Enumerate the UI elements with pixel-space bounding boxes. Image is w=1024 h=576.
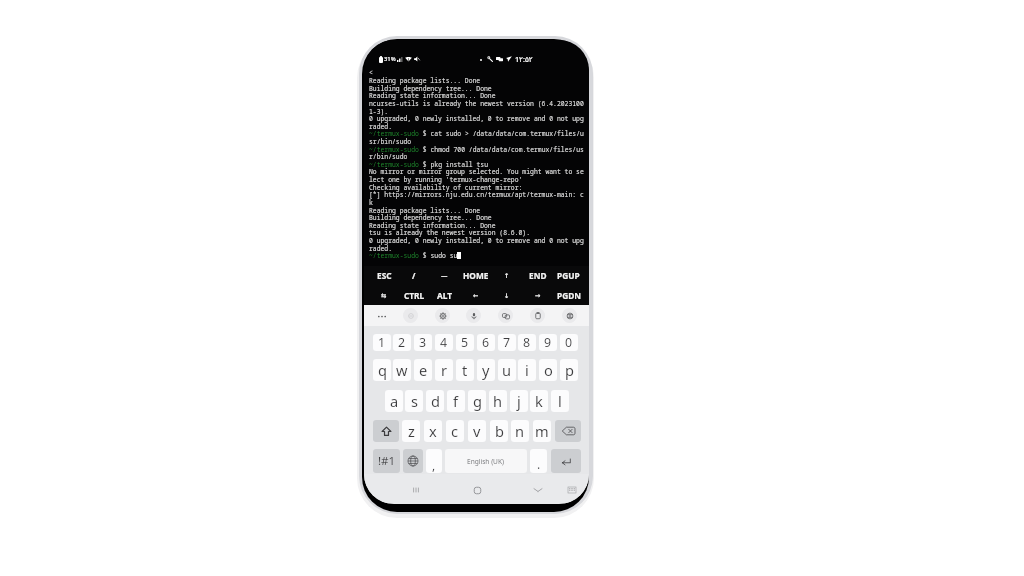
button[interactable]: i (518, 359, 536, 381)
button[interactable]: ⇆ (369, 285, 399, 305)
button[interactable]: Hide keyboard (530, 482, 546, 498)
staticText: Reading package lists... Done (369, 76, 481, 85)
button[interactable]: z (402, 420, 420, 442)
button[interactable]: n (511, 420, 529, 442)
staticText: r (441, 360, 448, 380)
button[interactable]: y (477, 359, 495, 381)
button[interactable]: Backspace (555, 420, 581, 442)
staticText: $ cat sudo > /data/data/com.termux/files… (419, 129, 584, 138)
button[interactable]: Stickers (498, 308, 513, 323)
button[interactable]: t (456, 359, 474, 381)
staticText: v (473, 421, 481, 441)
staticText: [*] https://mirrors.nju.edu.cn/termux/ap… (369, 190, 584, 199)
button[interactable]: HOME (460, 266, 491, 285)
button[interactable]: 2 (393, 334, 411, 351)
staticText: 0 (565, 334, 573, 351)
staticText: k (369, 198, 373, 207)
button[interactable]: b (490, 420, 508, 442)
button[interactable]: Shift (373, 420, 399, 442)
staticText: $ chmod 700 /data/data/com.termux/files/… (419, 145, 584, 154)
button[interactable]: PGUP (553, 266, 584, 285)
button[interactable]: Recent apps (408, 482, 424, 498)
staticText: d (431, 391, 440, 411)
button[interactable]: 5 (456, 334, 474, 351)
button[interactable]: l (551, 390, 569, 412)
button[interactable]: d (426, 390, 444, 412)
button[interactable]: . (530, 449, 547, 473)
button[interactable]: ↓ (491, 285, 522, 305)
button[interactable]: r (435, 359, 453, 381)
button[interactable]: e (414, 359, 432, 381)
button[interactable]: k (530, 390, 548, 412)
button[interactable]: q (373, 359, 391, 381)
button[interactable]: c (446, 420, 464, 442)
button[interactable]: j (510, 390, 528, 412)
button[interactable]: Clipboard (530, 308, 545, 323)
button[interactable]: ESC (369, 266, 399, 285)
staticText: lect one by running 'termux-change-repo' (369, 175, 523, 184)
button[interactable]: 6 (477, 334, 495, 351)
staticText: raded. (369, 122, 393, 131)
staticText: q (378, 360, 387, 380)
staticText: ~/termux-sudo (369, 129, 419, 138)
button[interactable]: ← (460, 285, 491, 305)
button[interactable]: h (489, 390, 507, 412)
button[interactable]: 1 (373, 334, 391, 351)
staticText: y (482, 360, 490, 380)
staticText: Reading state information... Done (369, 91, 496, 100)
staticText: ncurses-utils is already the newest vers… (369, 99, 584, 108)
button[interactable]: ↑ (491, 266, 522, 285)
button[interactable]: Modes (562, 308, 577, 323)
staticText: ~/termux-sudo (369, 251, 419, 260)
button[interactable]: English (UK) (445, 449, 527, 473)
button[interactable]: Search (403, 308, 418, 323)
button[interactable]: 8 (518, 334, 536, 351)
button[interactable]: — (429, 266, 460, 285)
staticText: 2 (398, 334, 406, 351)
staticText: END (529, 270, 547, 281)
staticText: 1۲:۵۲ (515, 54, 533, 64)
staticText: 9 (544, 334, 552, 351)
button[interactable]: Enter (551, 449, 581, 473)
staticText: ~/termux-sudo (369, 160, 419, 169)
button[interactable]: g (468, 390, 486, 412)
button[interactable]: o (539, 359, 557, 381)
button[interactable]: !#1 (373, 449, 400, 473)
button[interactable]: u (498, 359, 516, 381)
button[interactable]: a (385, 390, 403, 412)
button[interactable]: Settings (435, 308, 450, 323)
staticText: b (495, 421, 504, 441)
button[interactable]: PGDN (553, 285, 584, 305)
button[interactable]: f (447, 390, 465, 412)
staticText: 8 (523, 334, 531, 351)
staticText: ~/termux-sudo (369, 145, 419, 154)
button[interactable]: , (426, 449, 442, 473)
staticText: No mirror or mirror group selected. You … (369, 167, 584, 176)
button[interactable]: w (393, 359, 411, 381)
staticText: Building dependency tree... Done (369, 213, 492, 222)
staticText: ALT (437, 290, 453, 301)
staticText: u (502, 360, 512, 380)
button[interactable]: More options (376, 310, 388, 322)
button[interactable]: / (399, 266, 429, 285)
staticText: w (396, 360, 408, 380)
button[interactable]: x (424, 420, 442, 442)
button[interactable]: p (560, 359, 578, 381)
button[interactable]: END (522, 266, 553, 285)
button[interactable]: Change keyboard language (403, 449, 423, 473)
button[interactable]: Home (469, 482, 485, 498)
button[interactable]: 0 (560, 334, 578, 351)
button[interactable]: 4 (435, 334, 453, 351)
button[interactable]: v (468, 420, 486, 442)
button[interactable]: m (533, 420, 551, 442)
button[interactable]: Switch keyboard (565, 483, 579, 497)
button[interactable]: Voice input (466, 308, 481, 323)
staticText: o (544, 360, 553, 380)
button[interactable]: 7 (498, 334, 516, 351)
button[interactable]: CTRL (399, 285, 429, 305)
button[interactable]: → (522, 285, 553, 305)
button[interactable]: s (405, 390, 423, 412)
button[interactable]: 9 (539, 334, 557, 351)
button[interactable]: 3 (414, 334, 432, 351)
button[interactable]: ALT (429, 285, 460, 305)
